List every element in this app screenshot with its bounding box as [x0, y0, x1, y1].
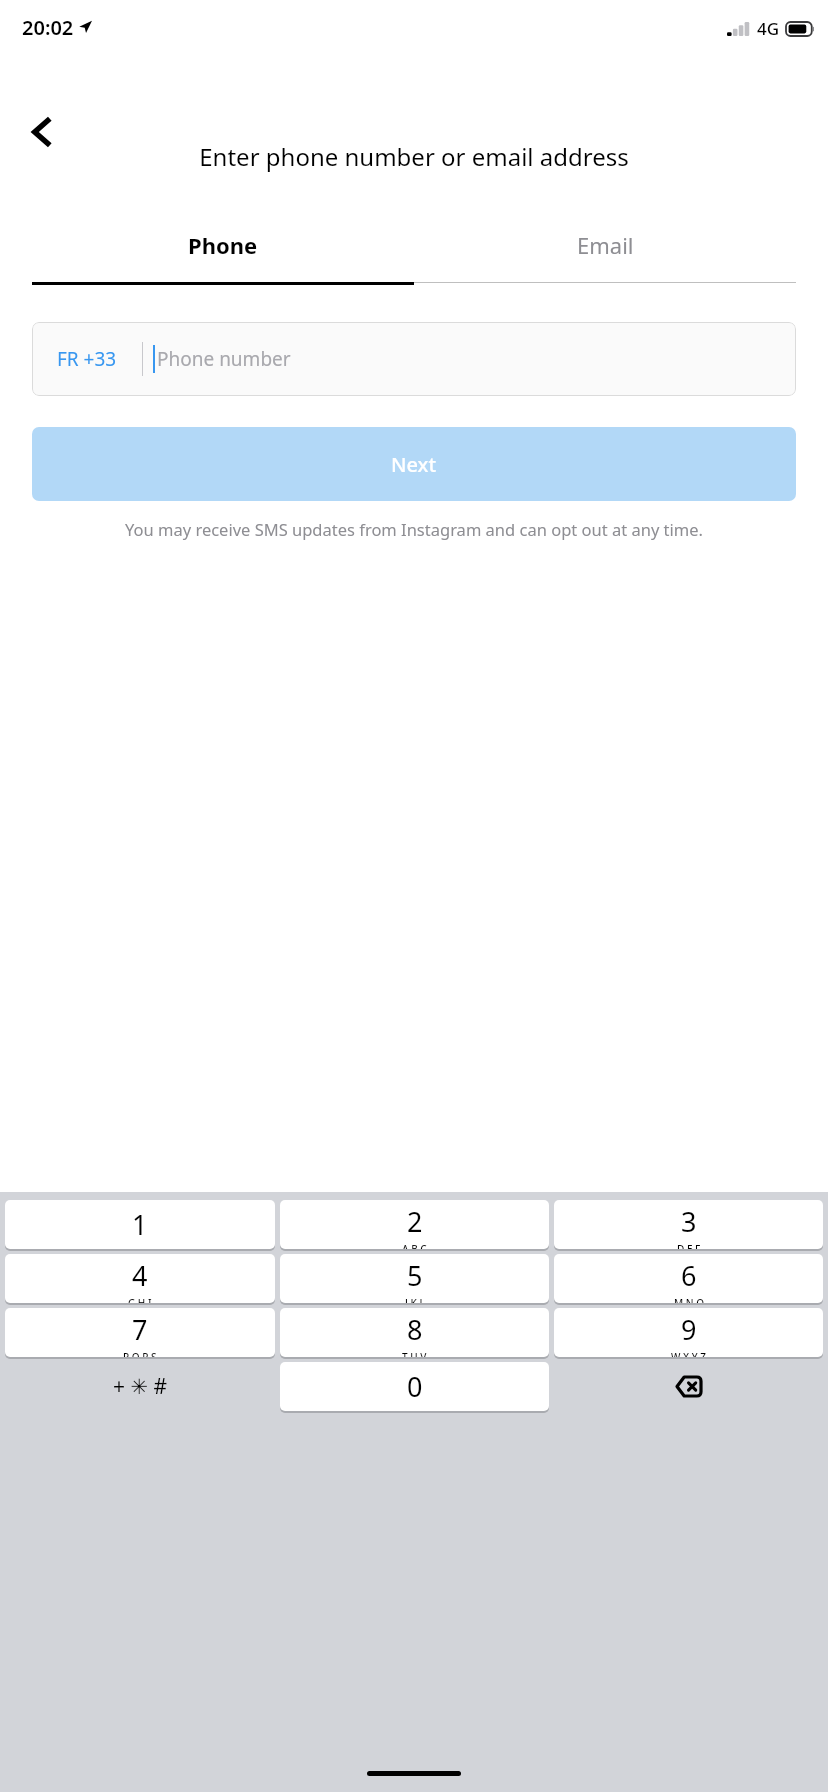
staticText: G H I: [128, 1296, 152, 1303]
button[interactable]: Backspace: [554, 1362, 823, 1411]
staticText: Phone number: [157, 346, 291, 372]
button[interactable]: Phone: [32, 222, 414, 268]
button[interactable]: + ✳ #: [5, 1362, 275, 1411]
staticText: 20:02: [22, 14, 74, 41]
button[interactable]: 7: [5, 1308, 275, 1357]
staticText: A B C: [402, 1242, 427, 1249]
staticText: 4G: [757, 17, 780, 40]
staticText: J K L: [405, 1296, 425, 1303]
button[interactable]: 5: [280, 1254, 549, 1303]
staticText: 3: [681, 1203, 697, 1240]
button[interactable]: 6: [554, 1254, 823, 1303]
button[interactable]: 2: [280, 1200, 549, 1249]
staticText: D E F: [677, 1242, 701, 1249]
button[interactable]: Next: [32, 427, 796, 501]
staticText: 9: [681, 1311, 697, 1348]
staticText: 7: [132, 1311, 148, 1348]
staticText: 0: [407, 1368, 423, 1405]
staticText: Enter phone number or email address: [199, 140, 629, 173]
staticText: 4: [132, 1257, 148, 1294]
staticText: Email: [577, 230, 634, 260]
staticText: You may receive SMS updates from Instagr…: [125, 518, 703, 540]
staticText: 8: [407, 1311, 423, 1348]
staticText: 5: [407, 1257, 423, 1294]
staticText: T U V: [402, 1350, 427, 1357]
button[interactable]: Back: [14, 104, 70, 160]
button[interactable]: 1: [5, 1200, 275, 1249]
staticText: Phone: [188, 230, 258, 260]
staticText: 6: [681, 1257, 697, 1294]
staticText: Next: [391, 451, 437, 478]
staticText: W X Y Z: [671, 1350, 706, 1357]
button[interactable]: 8: [280, 1308, 549, 1357]
staticText: P Q R S: [123, 1350, 157, 1357]
button[interactable]: Email: [414, 222, 796, 268]
staticText: M N O: [674, 1296, 704, 1303]
staticText: 2: [407, 1203, 423, 1240]
staticText: FR +33: [57, 346, 117, 372]
staticText: 1: [132, 1206, 148, 1243]
button[interactable]: FR +33: [32, 322, 796, 396]
button[interactable]: 0: [280, 1362, 549, 1411]
staticText: + ✳ #: [113, 1372, 168, 1401]
button[interactable]: 3: [554, 1200, 823, 1249]
button[interactable]: 9: [554, 1308, 823, 1357]
button[interactable]: 4: [5, 1254, 275, 1303]
